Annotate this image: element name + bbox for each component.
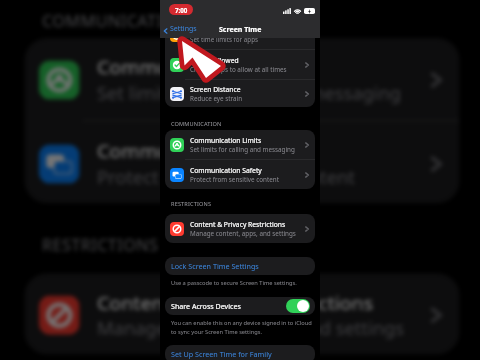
staticText: Content & Privacy Restrictions — [97, 290, 375, 315]
staticText: Always Allowed — [190, 56, 239, 65]
staticText: RESTRICTIONS — [42, 234, 161, 256]
staticText: Communication Safety — [190, 166, 262, 175]
staticText: Set limits for calling and messaging — [97, 80, 401, 105]
staticText: Choose apps to allow at all times — [190, 65, 287, 74]
staticText: Communication Limits — [190, 136, 262, 145]
staticText: COMMUNICATION — [42, 10, 190, 32]
staticText: Lock Screen Time Settings — [171, 261, 259, 271]
staticText: Screen Distance — [190, 85, 241, 94]
button[interactable]: Content & Privacy Restrictions — [165, 214, 315, 243]
staticText: Set time limits for apps — [190, 35, 259, 44]
staticText: RESTRICTIONS — [171, 200, 212, 208]
button[interactable]: Screen Distance — [165, 80, 315, 107]
staticText: Screen Time — [219, 25, 262, 35]
staticText: Protect from sensitive content — [97, 164, 355, 189]
button[interactable]: Communication Safety — [165, 160, 315, 189]
staticText: Communication Limits — [97, 55, 306, 80]
button[interactable]: App Limits — [165, 20, 315, 49]
staticText: Manage content, apps, and settings — [97, 315, 404, 340]
staticText: Manage content, apps, and settings — [190, 229, 296, 238]
other: Pointer — [0, 0, 480, 360]
staticText: Share Across Devices — [171, 301, 241, 311]
staticText: Protect from sensitive content — [190, 175, 279, 184]
button[interactable]: Share Across Devices — [165, 297, 315, 315]
button[interactable]: Lock Screen Time Settings — [165, 257, 315, 275]
staticText: You can enable this on any device signed… — [171, 319, 312, 335]
staticText: Use a passcode to secure Screen Time set… — [171, 279, 297, 287]
staticText: Reduce eye strain — [190, 94, 243, 103]
staticText: Communication Safety — [97, 139, 306, 164]
staticText: COMMUNICATION — [171, 120, 222, 128]
staticText: Content & Privacy Restrictions — [190, 220, 286, 229]
button[interactable]: Set Up Screen Time for Family — [165, 345, 315, 360]
staticText: Set limits for calling and messaging — [190, 145, 295, 154]
button[interactable]: Always Allowed — [165, 50, 315, 79]
staticText: Settings — [170, 24, 197, 34]
staticText: Set Up Screen Time for Family — [171, 349, 272, 359]
button[interactable]: Share Across Devices toggle — [286, 299, 310, 313]
button[interactable]: Communication Limits — [165, 130, 315, 159]
staticText: 7:00 — [175, 6, 188, 14]
button[interactable]: Settings — [160, 18, 197, 38]
staticText: App Limits — [190, 26, 224, 35]
